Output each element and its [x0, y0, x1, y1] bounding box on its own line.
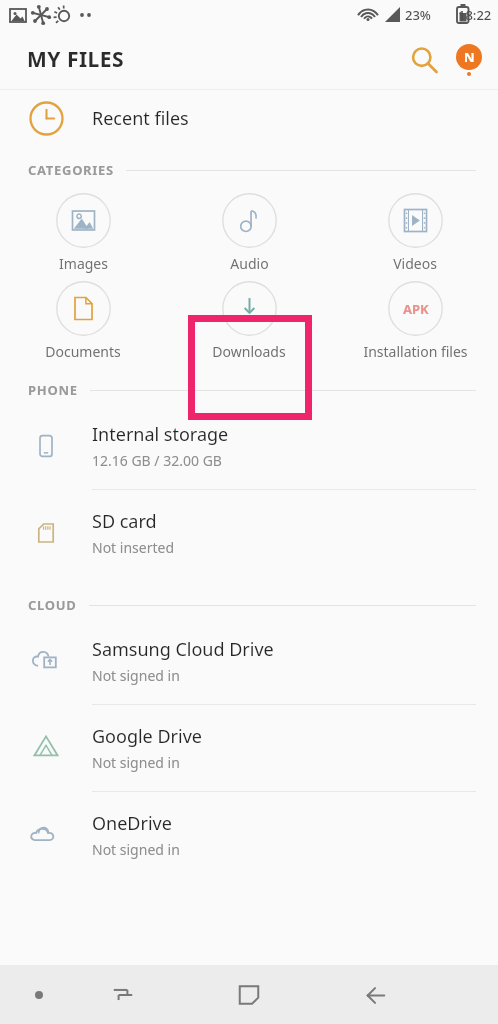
button[interactable]: Assistant	[18, 974, 60, 1016]
staticText: Samsung Cloud Drive	[92, 637, 274, 662]
staticText: 12.16 GB / 32.00 GB	[92, 451, 222, 470]
staticText: PHONE	[28, 381, 78, 399]
button[interactable]: Samsung Cloud Drive	[0, 618, 498, 704]
button[interactable]: Search	[400, 36, 448, 84]
staticText: Images	[59, 254, 108, 273]
staticText: MY FILES	[27, 45, 125, 74]
staticText: Videos	[393, 254, 437, 273]
staticText: APK	[403, 300, 429, 318]
button[interactable]: Home	[223, 969, 275, 1021]
staticText: Installation files	[363, 342, 468, 361]
button[interactable]: APK	[332, 281, 498, 361]
button[interactable]: OneDrive	[0, 792, 498, 878]
button[interactable]: Recent files	[0, 90, 498, 147]
staticText: Not inserted	[92, 538, 175, 557]
staticText: OneDrive	[92, 811, 172, 836]
button[interactable]: Back	[349, 969, 401, 1021]
staticText: Google Drive	[92, 724, 202, 749]
staticText: CLOUD	[28, 596, 77, 614]
staticText: Recent files	[92, 106, 189, 131]
button[interactable]: Videos	[332, 193, 498, 273]
staticText: Not signed in	[92, 666, 180, 685]
staticText: Not signed in	[92, 840, 180, 859]
staticText: CATEGORIES	[28, 161, 114, 179]
button[interactable]: Account	[446, 37, 492, 83]
staticText: N	[464, 48, 475, 66]
button[interactable]: SD card	[0, 490, 498, 576]
staticText: Internal storage	[92, 422, 229, 447]
button[interactable]: Images	[0, 193, 166, 273]
staticText: Documents	[45, 342, 121, 361]
button[interactable]: Audio	[166, 193, 332, 273]
button[interactable]: Google Drive	[0, 705, 498, 791]
staticText: Audio	[230, 254, 269, 273]
staticText: SD card	[92, 509, 157, 534]
staticText: Not signed in	[92, 753, 180, 772]
button[interactable]: Downloads	[166, 281, 332, 361]
button[interactable]: Documents	[0, 281, 166, 361]
staticText: Downloads	[212, 342, 286, 361]
staticText: 18:22	[458, 6, 492, 24]
button[interactable]: Recent apps	[97, 969, 149, 1021]
button[interactable]: Internal storage	[0, 403, 498, 489]
staticText: 23%	[405, 6, 431, 24]
